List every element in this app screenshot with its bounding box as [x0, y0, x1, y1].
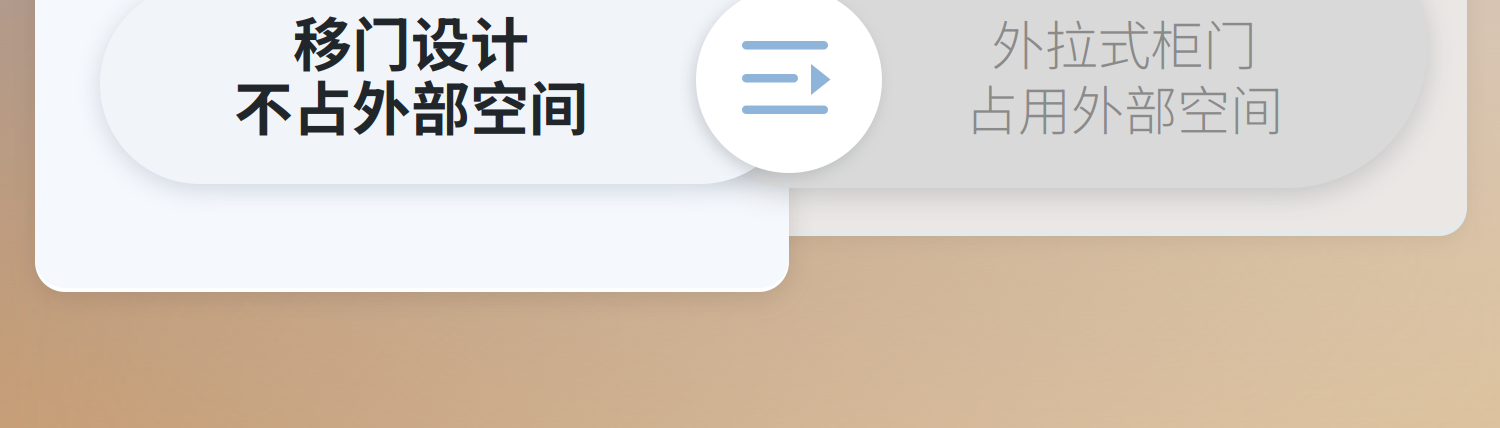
staticText: 占用外部空间: [965, 68, 1283, 146]
staticText: 外拉式柜门: [991, 3, 1256, 81]
staticText: 不占外部空间: [234, 62, 588, 147]
staticText: 移门设计: [293, 0, 529, 83]
